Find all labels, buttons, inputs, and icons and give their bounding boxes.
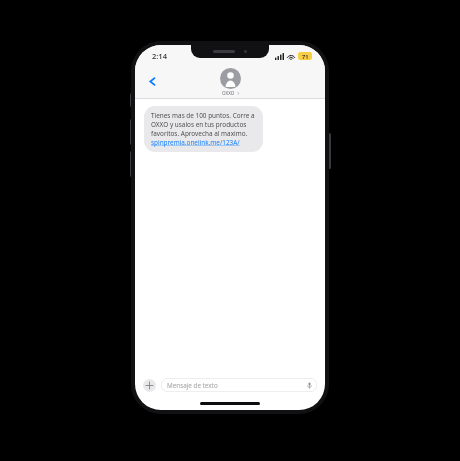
staticText: 2:14 <box>152 51 167 61</box>
button[interactable]: spinpremia.onelink.me/123A/ <box>151 138 240 147</box>
button[interactable]: Add attachment <box>143 379 156 392</box>
button[interactable]: Voice message <box>305 381 313 389</box>
staticText: Tienes mas de 100 puntos. Corre a OXXO y… <box>151 111 256 138</box>
staticText: 71 <box>302 53 309 60</box>
button[interactable]: Mensaje de texto <box>161 378 317 392</box>
button[interactable]: Back <box>141 70 163 92</box>
button[interactable]: Tienes mas de 100 puntos. Corre a OXXO y… <box>144 106 263 152</box>
button[interactable]: OXXO <box>220 68 241 96</box>
staticText: OXXO <box>222 90 235 96</box>
staticText: Mensaje de texto <box>167 381 218 390</box>
